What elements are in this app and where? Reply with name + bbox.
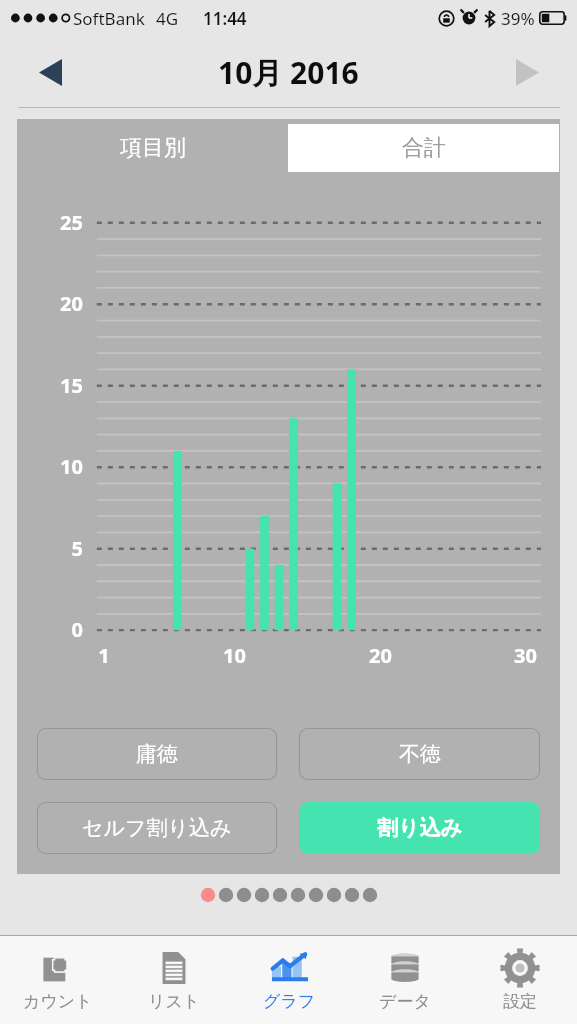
staticText: 10月 2016: [218, 52, 359, 93]
staticText: 11:44: [203, 7, 247, 30]
staticText: 25: [60, 209, 83, 236]
staticText: 1: [98, 642, 110, 669]
staticText: 30: [514, 642, 537, 669]
staticText: データ: [379, 991, 431, 1012]
staticText: カウント: [23, 991, 93, 1012]
button[interactable]: Next month: [477, 36, 577, 108]
button[interactable]: 項目別: [18, 124, 288, 172]
button[interactable]: グラフ: [232, 936, 347, 1024]
staticText: 合計: [402, 134, 446, 162]
button[interactable]: セルフ割り込み: [37, 802, 277, 854]
staticText: 10: [223, 642, 246, 669]
staticText: リスト: [148, 991, 201, 1012]
staticText: 5: [71, 535, 83, 562]
button[interactable]: 不徳: [299, 728, 540, 780]
staticText: セルフ割り込み: [82, 815, 232, 841]
button[interactable]: 庸徳: [37, 728, 277, 780]
button[interactable]: データ: [347, 936, 462, 1024]
button[interactable]: 割り込み: [299, 802, 540, 854]
staticText: 項目別: [120, 134, 186, 162]
staticText: SoftBank: [73, 7, 145, 30]
button[interactable]: 合計: [288, 124, 559, 172]
staticText: 15: [60, 372, 83, 399]
staticText: 10: [60, 453, 83, 480]
button[interactable]: 設定: [462, 936, 577, 1024]
staticText: 20: [60, 290, 83, 317]
staticText: 20: [369, 642, 392, 669]
button[interactable]: Previous month: [0, 36, 100, 108]
staticText: 庸徳: [136, 741, 178, 767]
staticText: 0: [71, 616, 83, 643]
button[interactable]: カウント: [0, 936, 116, 1024]
button[interactable]: リスト: [116, 936, 232, 1024]
staticText: 設定: [503, 991, 537, 1012]
staticText: グラフ: [263, 991, 316, 1012]
staticText: 不徳: [399, 741, 441, 767]
staticText: 割り込み: [377, 815, 462, 841]
staticText: 39%: [501, 7, 535, 30]
staticText: 4G: [156, 7, 179, 30]
